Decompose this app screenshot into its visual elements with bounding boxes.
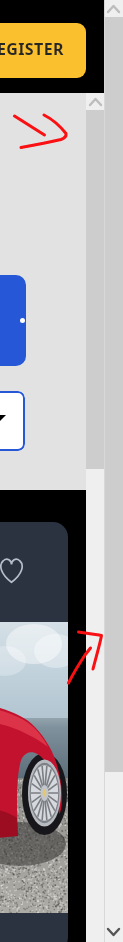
staticText: REGISTER [0, 38, 64, 60]
button[interactable] [0, 391, 25, 451]
button[interactable]: Scroll up [104, 0, 123, 17]
button[interactable]: Scroll down [104, 921, 123, 942]
button[interactable] [0, 522, 68, 942]
button[interactable]: Scroll up [86, 93, 104, 110]
button[interactable] [0, 275, 26, 366]
button[interactable]: REGISTER [0, 23, 86, 78]
